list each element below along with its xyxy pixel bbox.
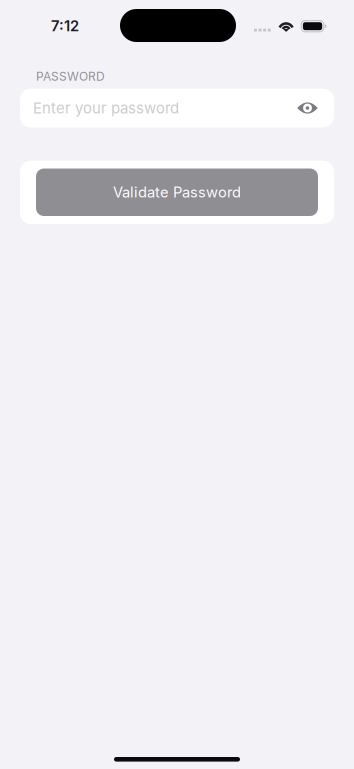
button[interactable]: Validate Password bbox=[36, 168, 318, 216]
staticText: Enter your password bbox=[33, 99, 179, 117]
staticText: PASSWORD bbox=[36, 69, 105, 83]
button[interactable]: Show password bbox=[289, 93, 326, 123]
staticText: Validate Password bbox=[113, 183, 241, 201]
button[interactable]: Enter your password bbox=[20, 88, 334, 127]
staticText: 7:12 bbox=[51, 17, 79, 35]
